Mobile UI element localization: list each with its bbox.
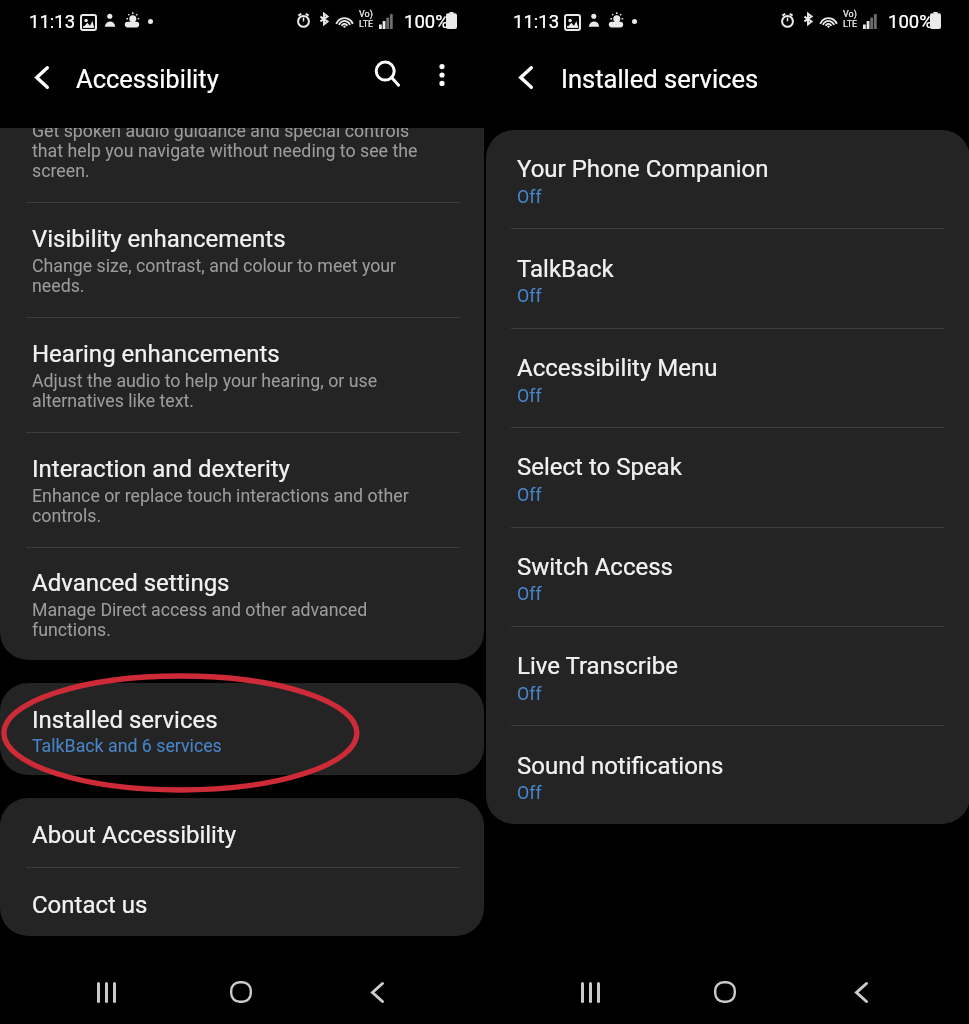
- staticText: Hearing enhancements: [32, 340, 280, 368]
- button[interactable]: Recent apps: [554, 970, 626, 1014]
- staticText: Select to Speak: [517, 453, 682, 481]
- staticText: Vo): [843, 9, 857, 20]
- button[interactable]: [0, 547, 484, 659]
- staticText: Interaction and dexterity: [32, 455, 290, 483]
- button[interactable]: [0, 202, 484, 317]
- button[interactable]: [0, 867, 484, 936]
- staticText: 100%: [888, 11, 933, 33]
- staticText: Off: [517, 187, 912, 207]
- button[interactable]: [486, 329, 969, 428]
- staticText: Off: [517, 386, 912, 406]
- button[interactable]: [486, 627, 969, 726]
- button[interactable]: More options: [418, 51, 466, 99]
- staticText: Installed services: [561, 64, 759, 94]
- staticText: Change size, contrast, and colour to mee…: [32, 256, 427, 296]
- button[interactable]: Home: [205, 970, 277, 1014]
- button[interactable]: Navigate up: [16, 51, 68, 103]
- button[interactable]: [486, 130, 969, 229]
- button[interactable]: [486, 428, 969, 527]
- staticText: Accessibility: [76, 64, 219, 94]
- button[interactable]: [0, 317, 484, 432]
- staticText: Contact us: [32, 891, 148, 919]
- button[interactable]: [486, 229, 969, 328]
- button[interactable]: [0, 432, 484, 547]
- button[interactable]: [0, 683, 484, 775]
- button[interactable]: Recent apps: [70, 970, 142, 1014]
- staticText: Vo): [359, 9, 373, 20]
- button[interactable]: Back: [825, 970, 897, 1014]
- staticText: TalkBack: [517, 255, 614, 283]
- staticText: Off: [517, 584, 912, 604]
- staticText: Off: [517, 783, 912, 803]
- staticText: Manage Direct access and other advanced …: [32, 600, 427, 640]
- staticText: LTE: [359, 19, 374, 30]
- staticText: LTE: [843, 19, 858, 30]
- staticText: About Accessibility: [32, 821, 237, 849]
- button[interactable]: Home: [689, 970, 761, 1014]
- button[interactable]: [0, 798, 484, 867]
- staticText: Visibility enhancements: [32, 225, 286, 253]
- button[interactable]: Navigate up: [500, 51, 552, 103]
- staticText: Your Phone Companion: [517, 155, 769, 183]
- staticText: TalkBack and 6 services: [32, 736, 427, 756]
- staticText: Get spoken audio guidance and special co…: [32, 128, 427, 181]
- button[interactable]: [486, 726, 969, 825]
- staticText: Live Transcribe: [517, 652, 678, 680]
- staticText: Sound notifications: [517, 752, 724, 780]
- staticText: Adjust the audio to help your hearing, o…: [32, 371, 427, 411]
- staticText: Switch Access: [517, 553, 673, 581]
- staticText: 11:13: [513, 11, 560, 33]
- button[interactable]: Back: [341, 970, 413, 1014]
- staticText: Off: [517, 684, 912, 704]
- staticText: Installed services: [32, 706, 218, 734]
- staticText: Enhance or replace touch interactions an…: [32, 486, 427, 526]
- staticText: Accessibility Menu: [517, 354, 718, 382]
- staticText: Advanced settings: [32, 569, 230, 597]
- staticText: Off: [517, 286, 912, 306]
- button[interactable]: [486, 528, 969, 627]
- staticText: 100%: [404, 11, 449, 33]
- staticText: Off: [517, 485, 912, 505]
- staticText: 11:13: [29, 11, 76, 33]
- button[interactable]: Search: [361, 50, 413, 102]
